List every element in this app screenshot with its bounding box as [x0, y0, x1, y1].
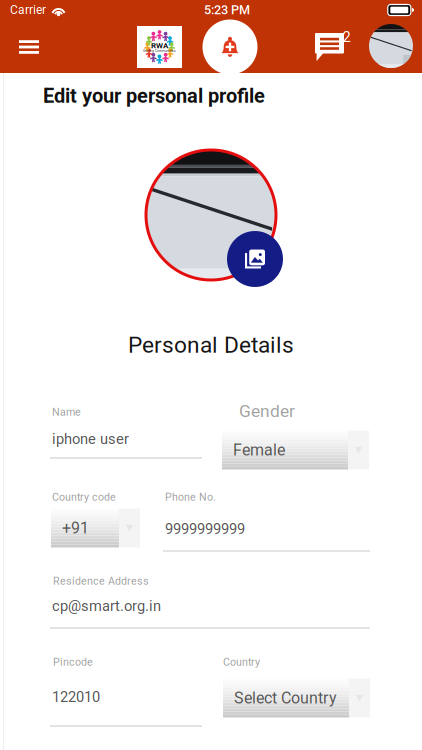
staticText: +91 [62, 519, 89, 537]
staticText: Country [223, 656, 260, 668]
staticText: Residence Address [53, 575, 149, 587]
staticText: RWA [151, 41, 168, 50]
staticText: Personal Details [128, 332, 294, 358]
staticText: Female [233, 441, 285, 459]
button[interactable]: RWA Home [137, 26, 182, 68]
button[interactable]: +91 [51, 508, 140, 547]
staticText: Select Country [234, 689, 337, 707]
button[interactable]: Change profile photo [227, 231, 283, 287]
button[interactable]: Messages, 2 unread [315, 33, 353, 61]
button[interactable]: Profile [369, 24, 413, 68]
staticText: 2 [342, 28, 350, 46]
staticText: Carrier [10, 3, 46, 17]
staticText: Phone No. [165, 491, 216, 503]
staticText: cp@smart.org.in [52, 597, 161, 615]
staticText: Edit your personal profile [43, 84, 265, 108]
staticText: Uniting Communities [143, 49, 176, 53]
button[interactable]: Female [222, 430, 369, 469]
staticText: Country code [52, 491, 116, 503]
staticText: Gender [239, 401, 295, 421]
staticText: 122010 [52, 688, 100, 706]
staticText: 5:23 PM [204, 3, 250, 17]
staticText: Pincode [53, 656, 93, 668]
button[interactable]: Select Country [223, 678, 370, 717]
staticText: Name [52, 406, 81, 418]
staticText: iphone user [52, 430, 129, 448]
button[interactable]: Raise an alert [202, 19, 257, 74]
button[interactable]: Menu [5, 25, 53, 69]
staticText: 9999999999 [165, 520, 245, 538]
